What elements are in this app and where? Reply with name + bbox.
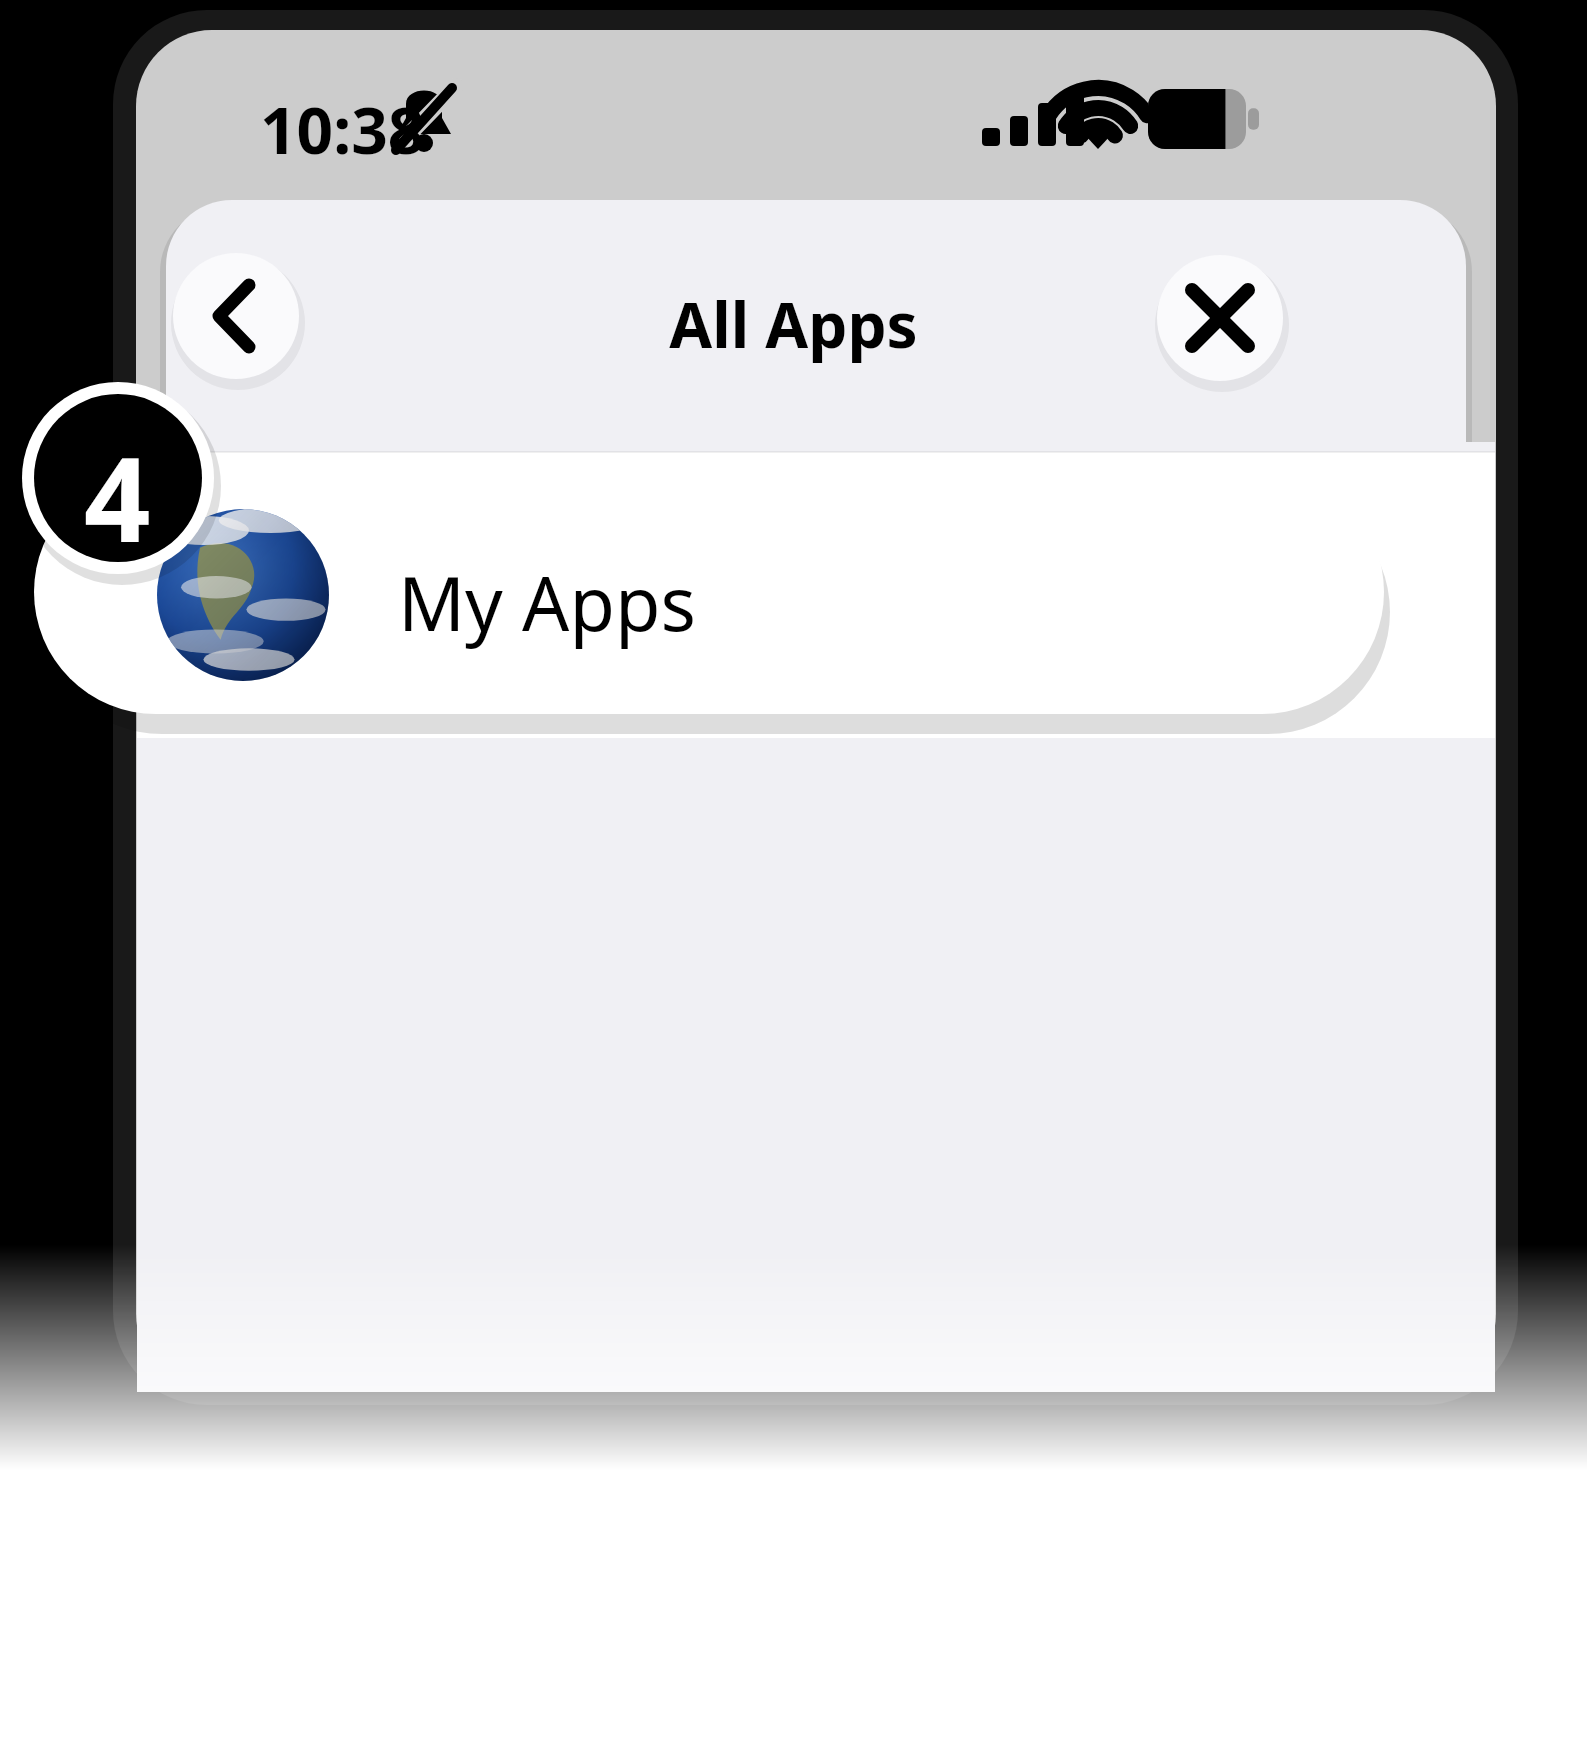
button[interactable]: Close: [1157, 255, 1283, 381]
staticText: 4: [84, 418, 151, 576]
button[interactable]: Back: [173, 253, 299, 379]
staticText: 10:38: [260, 86, 425, 173]
staticText: All Apps: [0, 282, 1587, 366]
staticText: My Apps: [398, 552, 696, 653]
button[interactable]: [34, 470, 1384, 714]
